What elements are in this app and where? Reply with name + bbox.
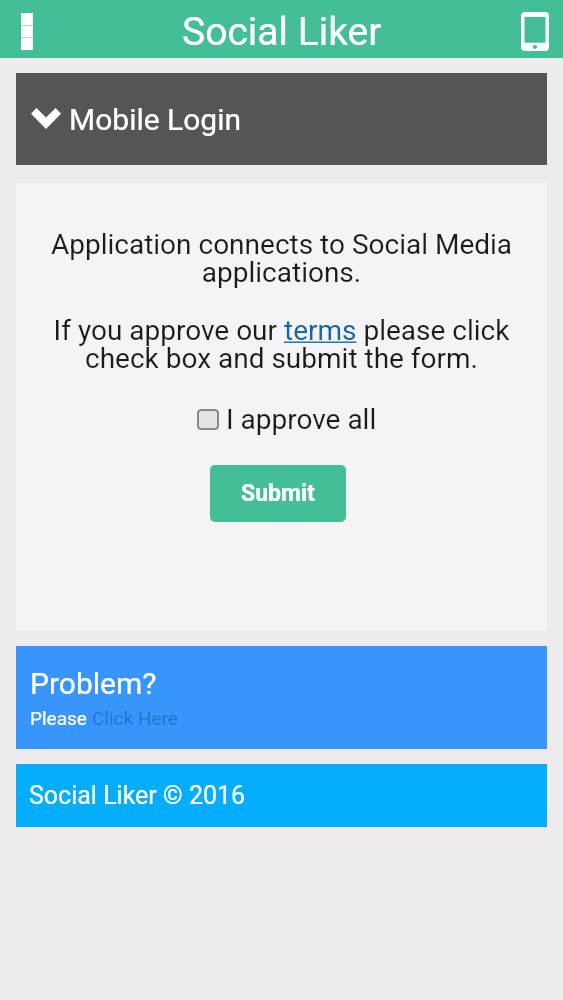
staticText: I approve all <box>226 403 377 436</box>
button[interactable]: Submit <box>210 465 346 522</box>
staticText: Social Liker <box>182 9 382 55</box>
staticText: Please <box>30 707 92 729</box>
staticText: Social Liker © 2016 <box>29 781 246 810</box>
staticText: If you approve our terms please click ch… <box>36 314 527 375</box>
staticText: Application connects to Social Media app… <box>38 228 525 289</box>
button[interactable]: Social Liker © 2016 <box>16 764 547 827</box>
staticText: Mobile Login <box>69 102 242 137</box>
button[interactable]: Device <box>515 0 555 58</box>
staticText: Problem? <box>30 666 157 701</box>
button[interactable]: Problem? <box>16 646 547 749</box>
button[interactable]: More options <box>7 0 47 58</box>
button[interactable]: I approve all <box>197 403 377 436</box>
staticText: Submit <box>241 480 315 507</box>
button[interactable]: Click Here <box>92 707 178 729</box>
button[interactable]: Mobile Login <box>16 73 547 165</box>
